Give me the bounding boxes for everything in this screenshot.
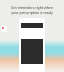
staticText: your prescription is ready [11, 10, 53, 15]
staticText: Get reminders right when [11, 5, 53, 10]
